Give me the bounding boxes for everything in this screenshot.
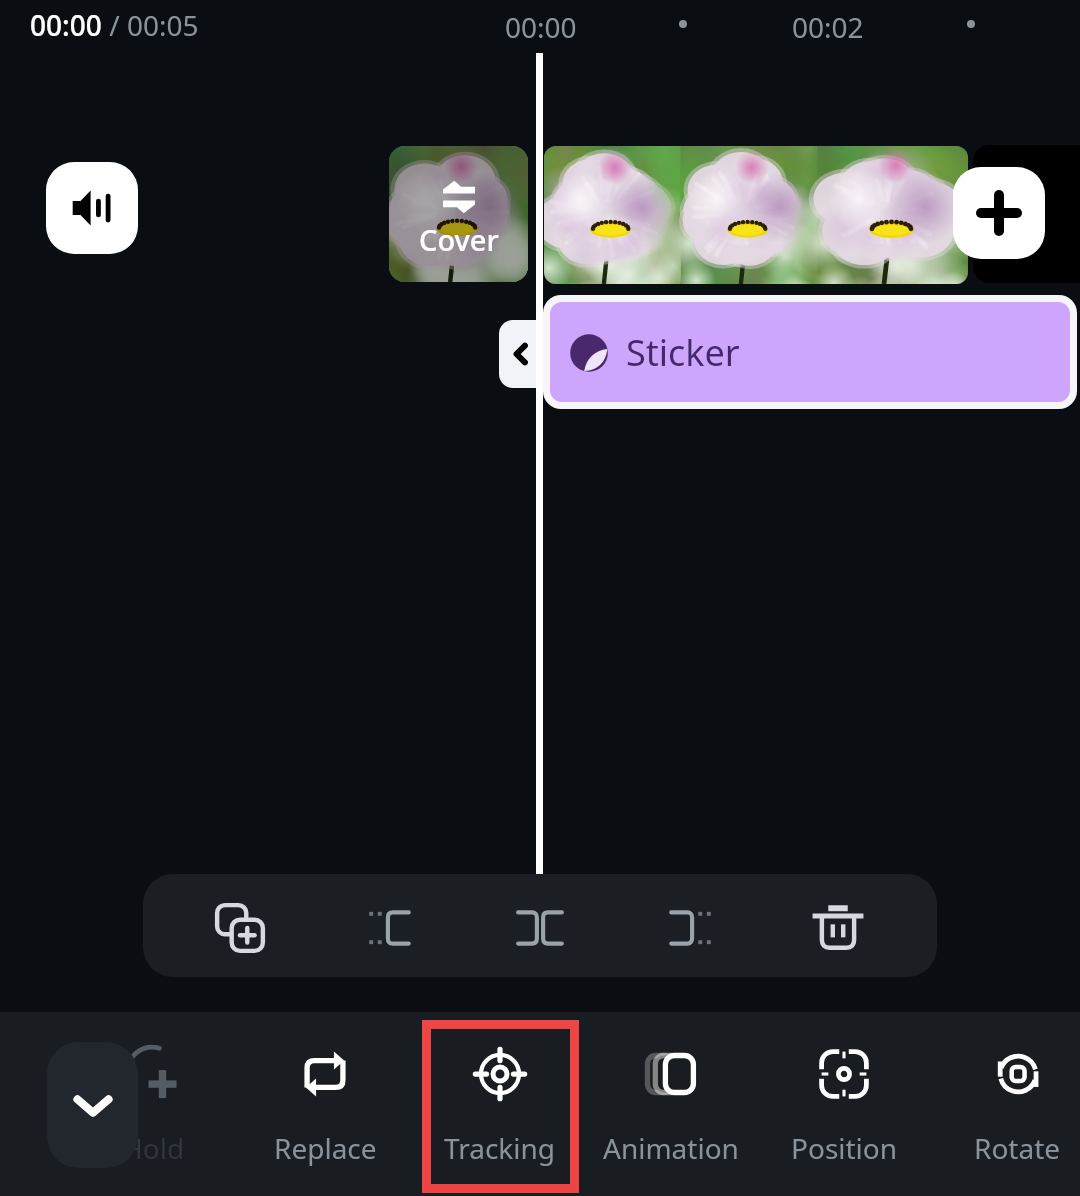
button[interactable]: Hold bbox=[67, 1012, 239, 1196]
staticText: Hold bbox=[122, 1129, 185, 1167]
button[interactable]: Collapse bbox=[47, 1042, 138, 1168]
button[interactable]: Trim start bbox=[342, 880, 438, 976]
button[interactable]: Tracking bbox=[414, 1012, 586, 1196]
staticText: 00:00 bbox=[505, 8, 577, 46]
staticText: 00:00 bbox=[30, 6, 102, 44]
button[interactable]: Add clip bbox=[953, 167, 1045, 259]
button[interactable]: Replace bbox=[239, 1012, 411, 1196]
button[interactable]: Copy bbox=[192, 880, 288, 976]
staticText: Animation bbox=[603, 1129, 739, 1167]
button[interactable]: Volume bbox=[46, 162, 138, 254]
button[interactable]: Delete bbox=[790, 880, 886, 976]
button[interactable]: Trim start bbox=[499, 320, 543, 388]
staticText: 00:02 bbox=[792, 8, 864, 46]
button[interactable]: Trim end bbox=[642, 880, 738, 976]
staticText: 00:05 bbox=[127, 6, 199, 44]
button[interactable] bbox=[544, 146, 968, 284]
button[interactable]: Sticker bbox=[550, 302, 1070, 402]
button[interactable]: Cover bbox=[389, 146, 528, 282]
button[interactable]: Animation bbox=[585, 1012, 757, 1196]
staticText: Sticker bbox=[626, 328, 740, 377]
staticText: Position bbox=[791, 1129, 898, 1167]
staticText: Cover bbox=[419, 220, 499, 259]
staticText: Rotate bbox=[974, 1129, 1061, 1167]
button[interactable]: Split bbox=[492, 880, 588, 976]
staticText: Tracking bbox=[444, 1129, 556, 1167]
staticText: Replace bbox=[274, 1129, 377, 1167]
staticText: / bbox=[102, 6, 127, 44]
button[interactable]: Rotate bbox=[931, 1012, 1080, 1196]
button[interactable]: Position bbox=[758, 1012, 930, 1196]
